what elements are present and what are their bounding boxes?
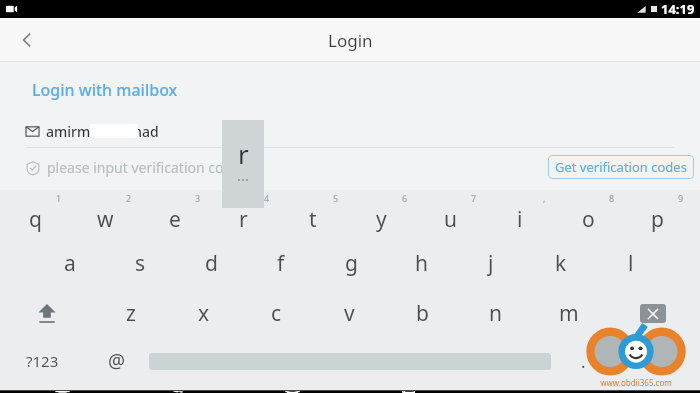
button[interactable]: DP <box>497 390 549 393</box>
button[interactable]: q <box>0 190 70 238</box>
staticText: p <box>651 205 664 234</box>
button[interactable]: Space <box>149 338 551 384</box>
staticText: v <box>344 299 355 328</box>
button[interactable]: x <box>167 288 240 338</box>
button[interactable]: Print <box>36 390 88 393</box>
staticText: m <box>559 299 579 328</box>
staticText: @ <box>108 348 126 374</box>
button[interactable]: k <box>526 238 596 288</box>
button[interactable]: h <box>386 238 456 288</box>
button[interactable]: i <box>485 190 554 238</box>
button[interactable]: amirmohammad <box>26 115 674 147</box>
staticText: y <box>376 205 387 234</box>
button[interactable]: p <box>623 190 692 238</box>
staticText: l <box>628 249 634 278</box>
button[interactable]: t <box>278 190 347 238</box>
button[interactable]: m <box>532 288 605 338</box>
staticText: w <box>97 205 114 234</box>
staticText: t <box>309 205 317 234</box>
button[interactable]: b <box>386 288 459 338</box>
staticText: 5 <box>333 192 339 204</box>
button[interactable]: @ <box>84 338 149 384</box>
button[interactable]: a <box>34 238 105 288</box>
staticText: n <box>489 299 502 328</box>
button[interactable]: Recents <box>382 390 434 393</box>
button[interactable]: . <box>551 338 616 384</box>
staticText: amirmohammad <box>46 122 159 141</box>
staticText: Login with mailbox <box>32 79 178 101</box>
staticText: x <box>198 299 210 328</box>
staticText: r <box>238 136 249 171</box>
button[interactable]: d <box>176 238 246 288</box>
button[interactable]: s <box>105 238 176 288</box>
staticText: 1 <box>56 192 62 204</box>
staticText: e <box>169 205 181 234</box>
staticText: q <box>29 205 42 234</box>
button[interactable]: g <box>316 238 386 288</box>
staticText: d <box>205 249 218 278</box>
staticText: c <box>271 299 282 328</box>
staticText: f <box>277 249 285 278</box>
staticText: 7 <box>471 192 477 204</box>
button[interactable]: l <box>596 238 666 288</box>
staticText: o <box>582 205 595 234</box>
button[interactable]: j <box>456 238 526 288</box>
staticText: u <box>444 205 457 234</box>
staticText: j <box>488 249 494 278</box>
staticText: 4 <box>264 192 270 204</box>
staticText: Get verification codes <box>555 158 687 176</box>
button[interactable]: u <box>416 190 485 238</box>
button[interactable]: Delete <box>605 288 700 338</box>
button[interactable]: f <box>246 238 316 288</box>
staticText: a <box>64 249 76 278</box>
button[interactable]: Get verification codes <box>555 158 687 176</box>
button[interactable]: r <box>209 190 278 238</box>
staticText: 9 <box>678 192 684 204</box>
button[interactable]: Home <box>266 390 318 393</box>
staticText: 6 <box>402 192 408 204</box>
staticText: h <box>415 249 428 278</box>
button[interactable]: y <box>347 190 416 238</box>
button[interactable]: c <box>240 288 313 338</box>
staticText: r <box>239 205 248 234</box>
staticText: k <box>555 249 567 278</box>
staticText: z <box>126 299 136 328</box>
staticText: , <box>543 192 546 204</box>
staticText: i <box>517 205 523 234</box>
staticText: DP <box>514 390 532 393</box>
staticText: please input verification code <box>47 158 240 177</box>
staticText: . <box>581 350 586 373</box>
button[interactable]: e <box>140 190 209 238</box>
staticText: 8 <box>609 192 615 204</box>
staticText: VCI <box>628 390 648 393</box>
button[interactable]: v <box>313 288 386 338</box>
button[interactable]: Back <box>0 18 54 62</box>
button[interactable]: Shift <box>0 288 94 338</box>
staticText: 14:19 <box>661 0 695 18</box>
button[interactable]: n <box>459 288 532 338</box>
staticText: www.obdii365.com <box>600 377 672 388</box>
staticText: b <box>416 299 429 328</box>
button[interactable]: z <box>94 288 167 338</box>
staticText: g <box>345 249 358 278</box>
staticText: 2 <box>126 192 132 204</box>
button[interactable]: VCI <box>612 390 664 393</box>
staticText: s <box>135 249 146 278</box>
button[interactable]: w <box>70 190 140 238</box>
staticText: ?123 <box>26 351 59 371</box>
button[interactable]: Back <box>151 390 203 393</box>
button[interactable]: o <box>554 190 623 238</box>
button[interactable]: ?123 <box>0 338 84 384</box>
staticText: Login <box>328 29 373 52</box>
staticText: 3 <box>195 192 201 204</box>
